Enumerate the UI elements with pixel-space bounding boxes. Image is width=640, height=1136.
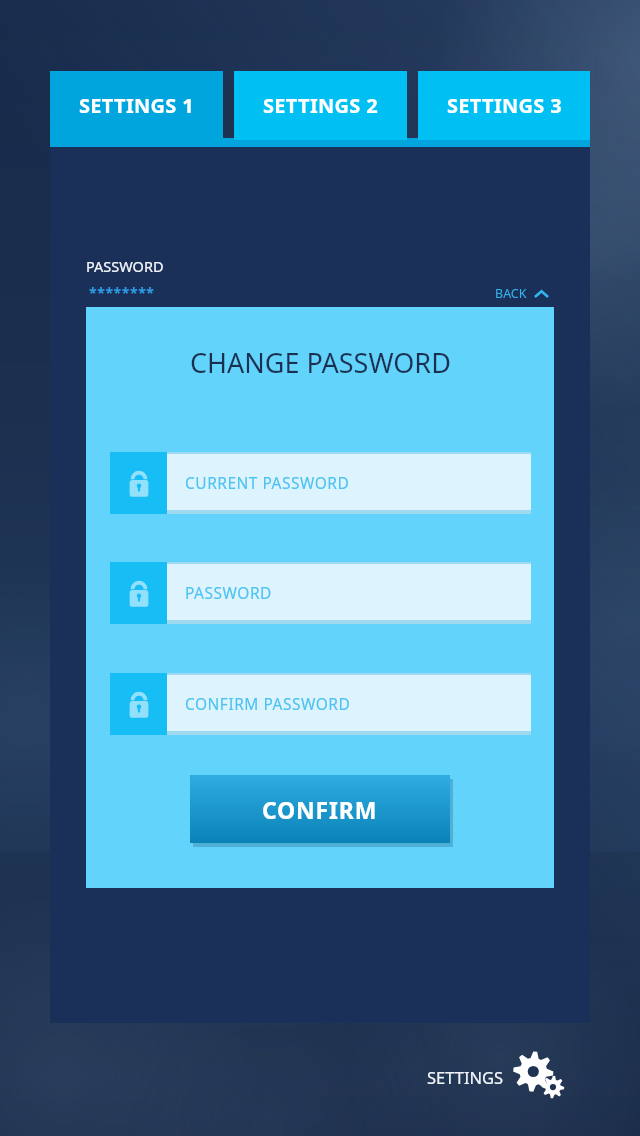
staticText: PASSWORD bbox=[86, 256, 164, 276]
staticText: CURRENT PASSWORD bbox=[185, 472, 350, 493]
button[interactable]: PASSWORD bbox=[110, 562, 531, 624]
button[interactable]: BACK bbox=[492, 282, 552, 305]
staticText: SETTINGS 2 bbox=[263, 92, 378, 119]
button[interactable]: CONFIRM PASSWORD bbox=[110, 673, 531, 735]
button[interactable]: SETTINGS bbox=[423, 1052, 568, 1102]
button[interactable]: SETTINGS 3 bbox=[418, 71, 590, 140]
button[interactable]: SETTINGS 1 bbox=[50, 71, 223, 140]
button[interactable]: SETTINGS 2 bbox=[234, 71, 407, 140]
staticText: ******** bbox=[89, 283, 155, 302]
button[interactable]: CURRENT PASSWORD bbox=[110, 452, 531, 514]
staticText: CONFIRM bbox=[262, 794, 378, 825]
staticText: CONFIRM PASSWORD bbox=[185, 693, 351, 714]
other: Settings bbox=[516, 1056, 564, 1098]
staticText: SETTINGS 1 bbox=[79, 92, 194, 119]
staticText: PASSWORD bbox=[185, 582, 272, 603]
staticText: SETTINGS bbox=[427, 1066, 504, 1088]
staticText: CHANGE PASSWORD bbox=[190, 344, 451, 381]
staticText: SETTINGS 3 bbox=[447, 92, 562, 119]
button[interactable]: CONFIRM bbox=[190, 775, 450, 843]
staticText: BACK bbox=[495, 285, 527, 302]
